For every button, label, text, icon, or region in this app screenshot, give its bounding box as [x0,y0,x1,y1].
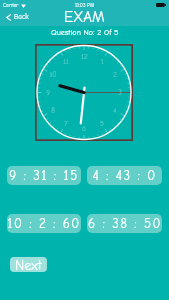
staticText: EXAM [64,8,105,25]
staticText: 9 [46,89,50,97]
staticText: 4 [113,107,117,115]
staticText: 12 [81,53,88,61]
staticText: 3 [118,89,122,97]
staticText: 6 [82,125,86,133]
button[interactable]: 9 : 31 : 15 [7,166,81,185]
staticText: 8 [51,107,55,115]
staticText: 9 : 31 : 15 [9,168,79,183]
staticText: 5 [100,120,104,128]
button[interactable]: 4 : 43 : 0 [87,166,162,185]
staticText: 11:03 PM [75,2,95,8]
button[interactable]: 10 : 2 : 60 [7,214,81,233]
staticText: Carrier [3,2,19,8]
staticText: Question No: 2 Of 5 [51,28,119,37]
staticText: 6 : 38 : 50 [88,216,162,231]
button[interactable]: Back [6,10,29,24]
staticText: 2 [113,71,117,79]
staticText: 10 [49,71,57,79]
button[interactable]: 6 : 38 : 50 [87,214,162,233]
staticText: 10 : 2 : 60 [7,216,81,231]
staticText: 4 : 43 : 0 [92,168,157,183]
staticText: 1 [101,58,104,66]
staticText: 11 [63,58,69,66]
button[interactable]: Next [10,257,47,272]
staticText: Next [15,257,42,272]
staticText: 7 [64,120,68,128]
staticText: Back [14,13,29,21]
